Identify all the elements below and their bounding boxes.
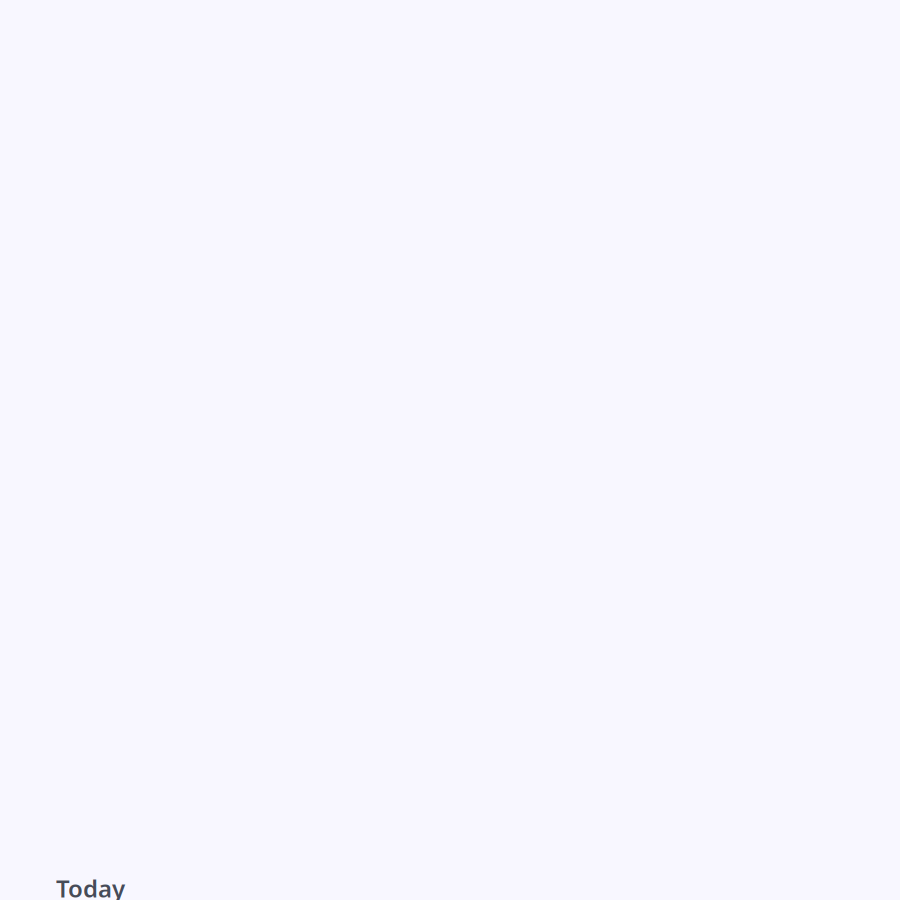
staticText: Today — [56, 872, 125, 900]
